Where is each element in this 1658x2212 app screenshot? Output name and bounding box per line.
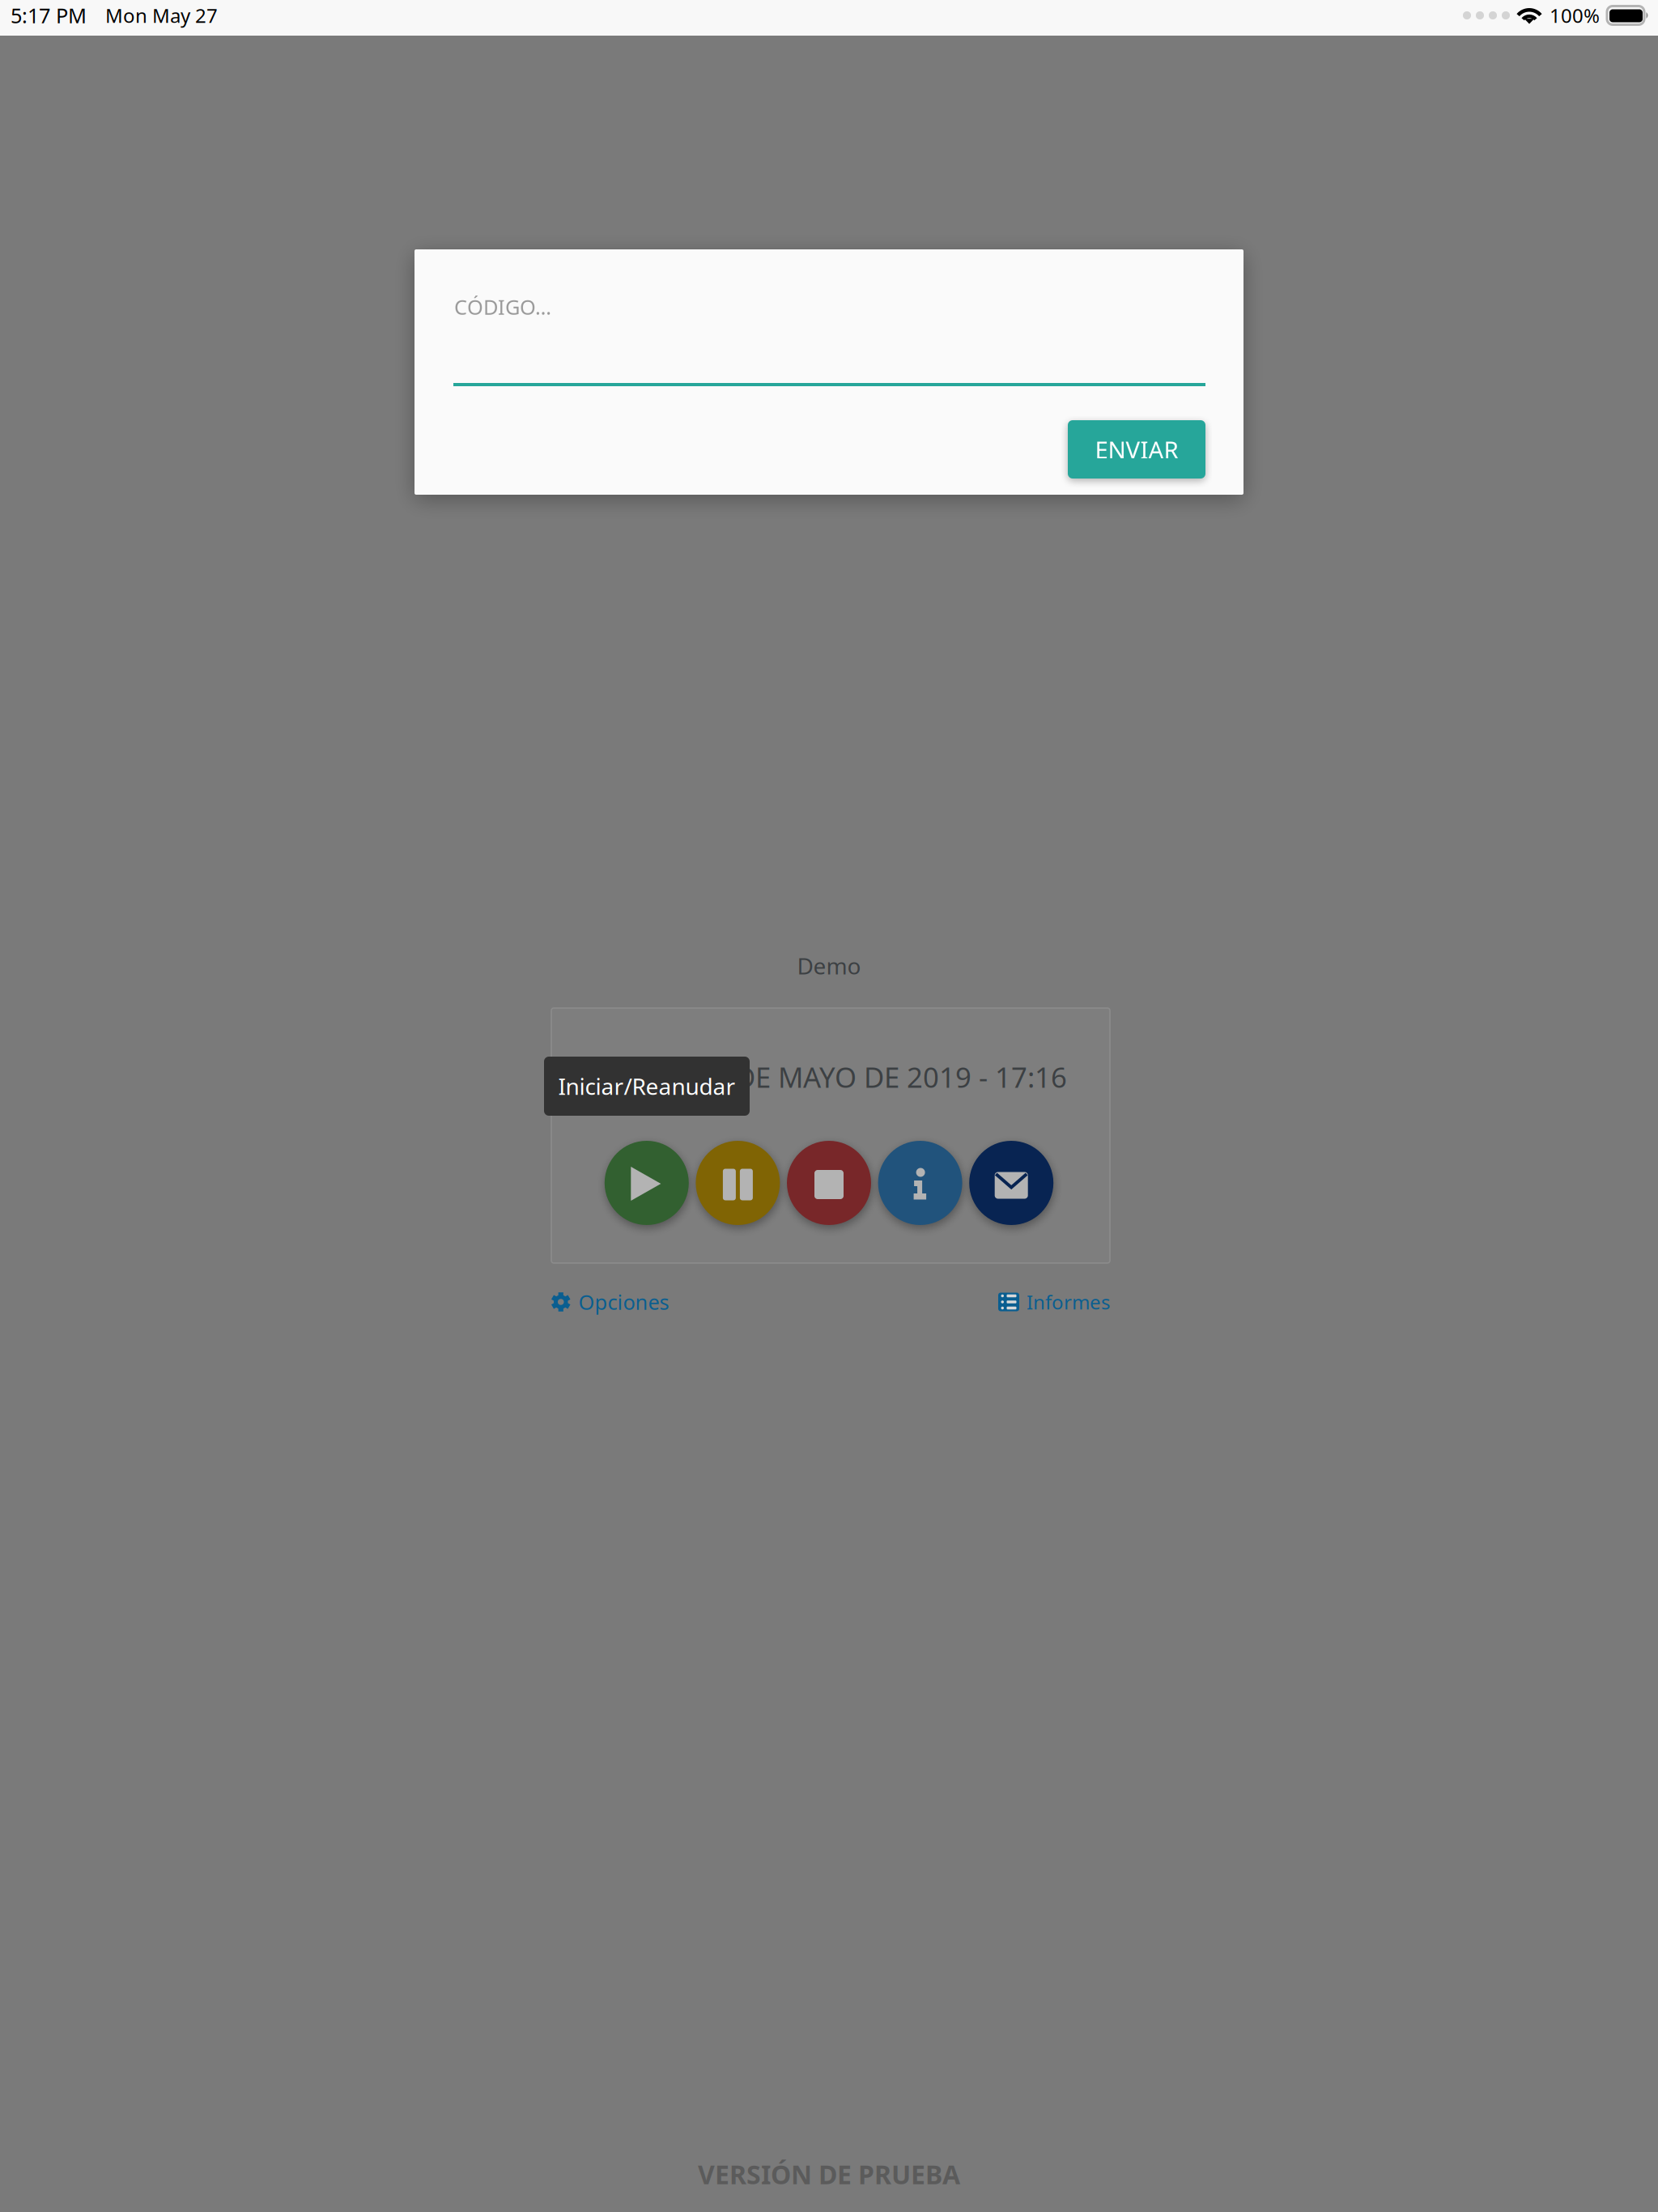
button[interactable]: Informes — [998, 1289, 1110, 1315]
button[interactable]: Iniciar/Reanudar — [605, 1141, 689, 1225]
staticText: Opciones — [578, 1288, 669, 1316]
button[interactable]: Información — [878, 1141, 962, 1225]
staticText: Iniciar/Reanudar — [558, 1071, 735, 1101]
button[interactable]: Pausar — [696, 1141, 780, 1225]
staticText: 100% — [1550, 3, 1600, 28]
staticText: Demo — [797, 951, 861, 981]
button[interactable]: Enviar por correo — [969, 1141, 1053, 1225]
staticText: CÓDIGO… — [454, 293, 551, 320]
staticText: VERSIÓN DE PRUEBA — [698, 2157, 960, 2191]
staticText: LUNES, 27 DE MAYO DE 2019 - 17:16 — [594, 1058, 1067, 1095]
staticText: ENVIAR — [1095, 434, 1178, 465]
button[interactable]: Detener — [787, 1141, 871, 1225]
staticText: 5:17 PM — [11, 2, 87, 29]
button[interactable]: ENVIAR — [1068, 420, 1205, 479]
button[interactable]: Opciones — [551, 1288, 669, 1316]
staticText: Mon May 27 — [105, 3, 218, 28]
staticText: Informes — [1027, 1289, 1110, 1315]
